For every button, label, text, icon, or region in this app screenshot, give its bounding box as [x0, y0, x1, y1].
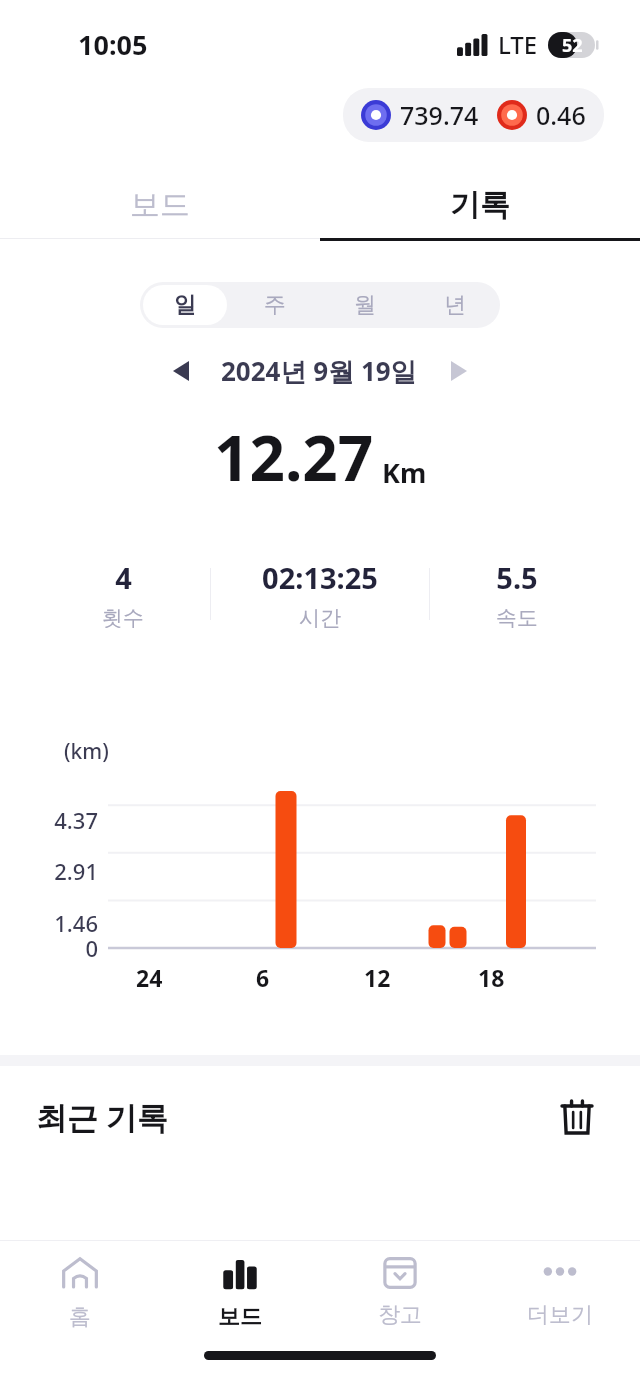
button[interactable]: 홈 — [0, 1241, 160, 1341]
staticText: 년 — [444, 291, 466, 319]
button[interactable]: 더보기 — [480, 1241, 640, 1341]
staticText: 횟수 — [102, 605, 144, 631]
staticText: 창고 — [378, 1301, 422, 1329]
button[interactable]: Next day — [439, 351, 479, 391]
staticText: 12 — [364, 962, 391, 993]
staticText: 02:13:25 — [262, 558, 378, 597]
staticText: 52 — [562, 33, 583, 58]
staticText: 보드 — [130, 186, 190, 224]
button[interactable]: 보드 — [160, 1241, 320, 1341]
staticText: 24 — [136, 962, 163, 993]
button[interactable]: 기록 — [320, 172, 640, 238]
staticText: 4.37 — [0, 805, 98, 835]
button[interactable]: 월 — [323, 285, 407, 325]
staticText: 시간 — [299, 605, 341, 631]
staticText: LTE — [498, 28, 538, 61]
staticText: 2024년 9월 19일 — [221, 353, 417, 389]
staticText: 0 — [0, 933, 98, 963]
button[interactable]: 일 — [143, 285, 227, 325]
staticText: 최근 기록 — [36, 1096, 169, 1138]
staticText: 6 — [256, 962, 270, 993]
staticText: 12.27 — [214, 415, 374, 499]
staticText: 홈 — [69, 1303, 91, 1331]
button[interactable]: 739.74 — [343, 88, 604, 142]
button[interactable]: Previous day — [161, 351, 201, 391]
staticText: 5.5 — [496, 558, 538, 597]
staticText: 보드 — [218, 1303, 262, 1331]
staticText: 10:05 — [78, 26, 148, 63]
button[interactable]: 보드 — [0, 172, 320, 238]
staticText: 1.46 — [0, 908, 98, 938]
button[interactable]: Delete records — [550, 1090, 604, 1144]
staticText: 0.46 — [536, 98, 586, 132]
staticText: 더보기 — [527, 1301, 593, 1329]
staticText: 월 — [354, 291, 376, 319]
staticText: 18 — [478, 962, 505, 993]
staticText: 주 — [264, 291, 286, 319]
staticText: 4 — [115, 558, 132, 597]
button[interactable]: 창고 — [320, 1241, 480, 1341]
staticText: (km) — [64, 737, 109, 766]
button[interactable]: 년 — [413, 285, 497, 325]
staticText: 739.74 — [400, 98, 479, 132]
staticText: Km — [382, 454, 427, 491]
button[interactable]: 4 — [36, 534, 604, 654]
staticText: 일 — [174, 291, 196, 319]
staticText: 기록 — [450, 186, 510, 224]
button[interactable]: 주 — [233, 285, 317, 325]
staticText: 2.91 — [0, 856, 98, 886]
staticText: 속도 — [496, 605, 538, 631]
